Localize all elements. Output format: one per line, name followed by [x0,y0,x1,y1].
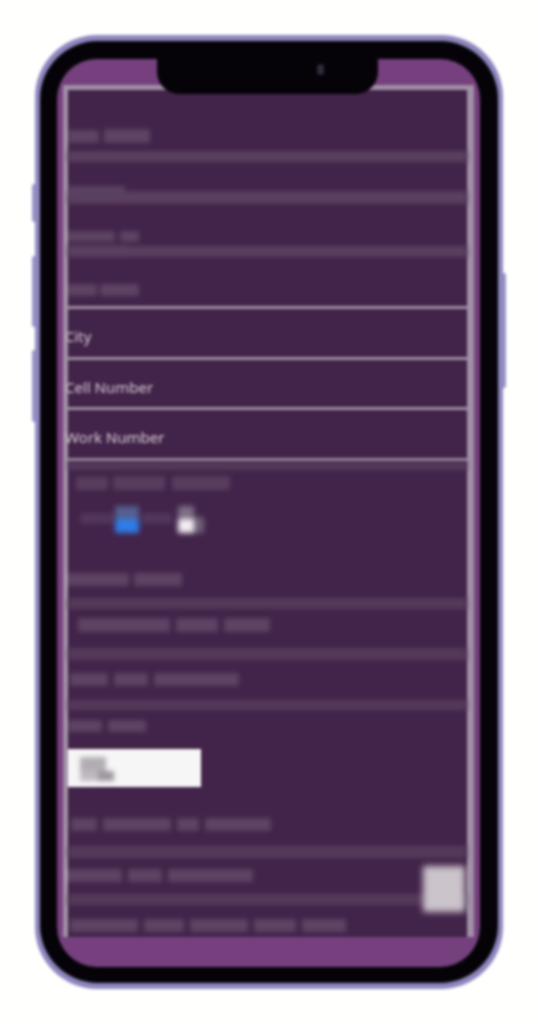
staticText: City [65,326,92,346]
button[interactable] [68,749,201,787]
button[interactable]: Work Number [65,427,405,451]
button[interactable]: Action [423,866,465,912]
button[interactable]: Cell Number [65,377,405,401]
button[interactable]: Option one [80,503,140,535]
button[interactable]: City [65,326,405,350]
staticText: Cell Number [65,377,154,397]
staticText: Work Number [65,427,165,447]
button[interactable]: Option two [142,503,204,535]
